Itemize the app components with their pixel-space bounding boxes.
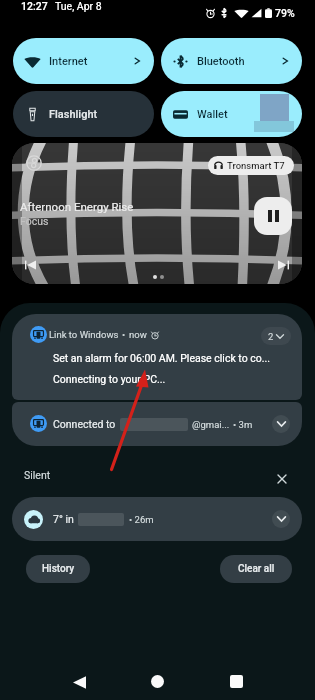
button[interactable]: Previous track xyxy=(25,260,36,270)
button[interactable]: Back xyxy=(53,656,105,700)
staticText: Connecting to your PC... xyxy=(53,373,166,385)
button[interactable]: Wallet xyxy=(161,91,302,137)
staticText: Afternoon Energy Rise xyxy=(20,200,134,213)
staticText: Bluetooth xyxy=(197,55,282,68)
button[interactable]: Recent apps xyxy=(210,655,262,700)
button[interactable]: Internet xyxy=(13,38,154,84)
button[interactable]: Tronsmart T7 xyxy=(208,156,294,175)
button[interactable]: Expand weather notification xyxy=(272,510,290,528)
button[interactable]: History xyxy=(26,555,90,583)
button[interactable]: Dismiss silent notifications xyxy=(273,470,290,487)
staticText: History xyxy=(42,563,75,575)
button[interactable]: Connected to xyxy=(12,402,302,446)
staticText: now xyxy=(129,329,147,340)
button[interactable]: 7° in xyxy=(12,497,302,541)
staticText: Flashlight xyxy=(49,108,140,121)
staticText: Clear all xyxy=(238,563,275,575)
staticText: Link to Windows xyxy=(49,329,119,340)
button[interactable]: Home xyxy=(131,655,183,700)
staticText: Tue, Apr 8 xyxy=(55,0,102,12)
staticText: Set an alarm for 06:00 AM. Please click … xyxy=(53,352,271,364)
staticText: • 26m xyxy=(129,514,154,525)
staticText: 7° in xyxy=(53,513,74,525)
staticText: Tronsmart T7 xyxy=(227,160,285,171)
staticText: • xyxy=(122,329,126,340)
staticText: 79% xyxy=(275,7,295,19)
staticText: 12:27 xyxy=(21,0,48,12)
staticText: Wallet xyxy=(197,108,228,121)
button[interactable]: Link to Windows xyxy=(12,314,302,400)
staticText: Internet xyxy=(49,55,134,68)
staticText: 2 xyxy=(268,331,274,342)
staticText: • 3m xyxy=(233,419,253,430)
button[interactable]: Tronsmart T7 xyxy=(12,143,302,284)
button[interactable]: Next track xyxy=(278,260,289,270)
button[interactable]: Pause xyxy=(254,197,292,235)
staticText: Focus xyxy=(20,215,49,227)
button[interactable]: Bluetooth xyxy=(161,38,302,84)
staticText: @gmai... xyxy=(192,419,230,430)
button[interactable]: Expand notification group xyxy=(261,327,291,345)
button[interactable]: Flashlight xyxy=(13,91,154,137)
staticText: Connected to xyxy=(53,418,116,430)
staticText: Silent xyxy=(24,469,51,481)
button[interactable]: Clear all xyxy=(220,555,292,583)
button[interactable]: Expand notification xyxy=(272,415,290,433)
